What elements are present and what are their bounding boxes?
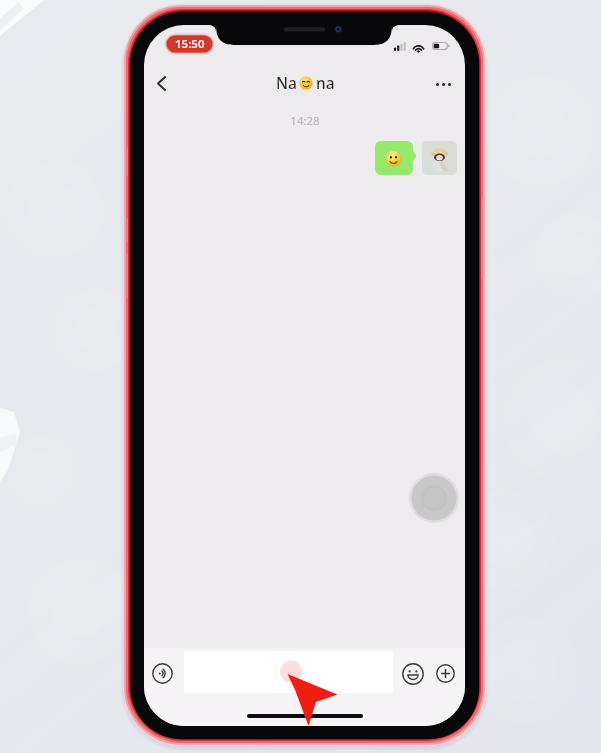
staticText: 14:28 [290,113,320,126]
staticText: 15:50 [175,36,205,52]
button[interactable]: Profile picture [422,141,457,175]
button[interactable]: Back [146,65,176,102]
button[interactable]: More functions [436,664,455,683]
button[interactable]: Screen recording 15:50 [163,32,216,56]
button[interactable]: Voice message [152,663,173,684]
staticText: na [316,72,335,93]
button[interactable]: Sticker message [375,141,416,175]
button[interactable]: AssistiveTouch [409,473,459,523]
button[interactable]: More options [428,66,458,103]
staticText: Na [276,72,297,93]
button[interactable]: Emoji [402,663,424,685]
button[interactable]: Message input [184,651,393,693]
